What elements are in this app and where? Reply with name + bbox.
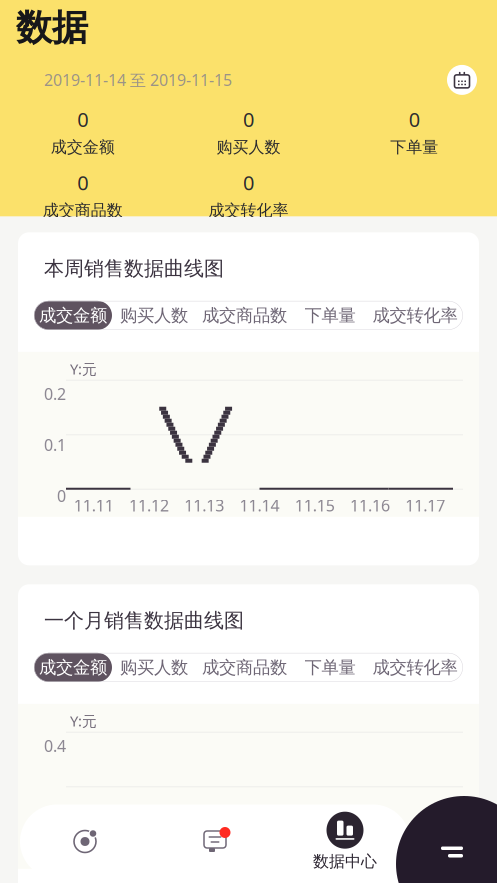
staticText: 一个月销售数据曲线图 <box>44 608 244 633</box>
staticText: 11.16 <box>350 495 390 516</box>
button[interactable]: 成交商品数 <box>196 653 293 682</box>
staticText: 0.1 <box>44 434 66 455</box>
staticText: 下单量 <box>304 657 355 678</box>
button[interactable]: 成交转化率 <box>367 653 463 682</box>
button[interactable]: 选择日期 <box>442 60 482 100</box>
button[interactable]: 消息 <box>150 804 280 878</box>
staticText: 成交商品数 <box>202 305 287 326</box>
staticText: 购买人数 <box>120 305 188 326</box>
button[interactable]: 成交转化率 <box>367 301 463 330</box>
staticText: 成交金额 <box>51 137 115 157</box>
staticText: 11.14 <box>239 495 279 516</box>
staticText: 本周销售数据曲线图 <box>44 256 224 281</box>
staticText: 购买人数 <box>216 137 280 157</box>
staticText: Y:元 <box>70 711 97 731</box>
staticText: 2019-11-14 至 2019-11-15 <box>44 69 232 90</box>
button[interactable]: 成交商品数 <box>196 301 293 330</box>
staticText: 11.12 <box>129 495 169 516</box>
staticText: 购买人数 <box>120 657 188 678</box>
staticText: 0 <box>409 106 420 132</box>
button[interactable]: 购买人数 <box>112 301 196 330</box>
staticText: 11.17 <box>405 495 445 516</box>
staticText: 0.2 <box>44 383 66 404</box>
staticText: 下单量 <box>390 137 438 157</box>
staticText: Y:元 <box>70 359 97 379</box>
staticText: 0 <box>243 106 254 132</box>
staticText: 成交金额 <box>39 657 107 678</box>
staticText: 下单量 <box>304 305 355 326</box>
staticText: 0 <box>77 169 88 196</box>
staticText: 成交转化率 <box>372 305 457 326</box>
button[interactable]: 成交金额 <box>34 301 112 330</box>
staticText: 0 <box>57 485 66 506</box>
button[interactable]: 数据中心 <box>280 804 410 878</box>
staticText: 数据 <box>16 6 88 50</box>
staticText: 11.15 <box>295 495 335 516</box>
staticText: 数据中心 <box>313 852 377 871</box>
staticText: 11.11 <box>74 495 114 516</box>
staticText: 成交转化率 <box>208 201 288 220</box>
staticText: 成交金额 <box>39 305 107 326</box>
staticText: 0 <box>77 106 88 132</box>
button[interactable]: 成交金额 <box>34 653 112 682</box>
staticText: 0.4 <box>44 735 66 756</box>
button[interactable]: 下单量 <box>293 653 367 682</box>
staticText: 成交转化率 <box>372 657 457 678</box>
staticText: 11.13 <box>184 495 224 516</box>
staticText: 0 <box>243 169 254 196</box>
staticText: 成交商品数 <box>43 201 123 220</box>
button[interactable]: 购买人数 <box>112 653 196 682</box>
button[interactable]: 发现 <box>20 804 150 878</box>
button[interactable]: 菜单 <box>396 796 497 883</box>
staticText: 成交商品数 <box>202 657 287 678</box>
button[interactable]: 下单量 <box>293 301 367 330</box>
